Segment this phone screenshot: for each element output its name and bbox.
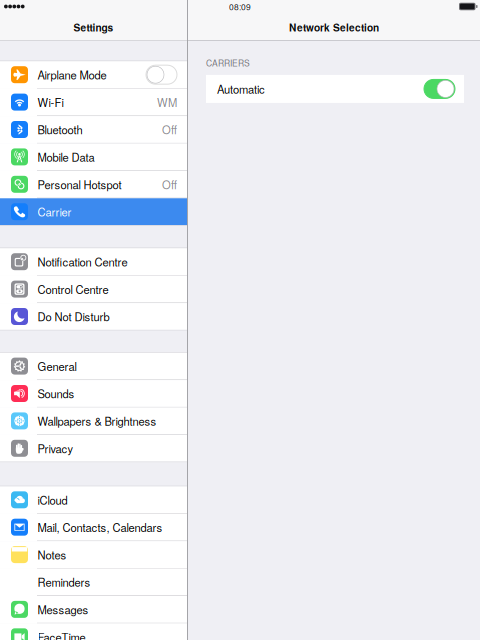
staticText: Do Not Disturb — [37, 308, 109, 324]
staticText: 08:09 — [229, 0, 251, 13]
button[interactable]: FaceTime — [0, 623, 187, 640]
button[interactable]: Messages — [0, 596, 187, 623]
staticText: CARRIERS — [206, 57, 250, 69]
button[interactable]: Mobile Data — [0, 143, 187, 171]
button[interactable]: Notes — [0, 541, 187, 569]
button[interactable]: Wi-Fi — [0, 89, 187, 116]
staticText: Personal Hotspot — [37, 176, 121, 192]
staticText: Settings — [73, 20, 113, 34]
button[interactable]: Privacy — [0, 435, 187, 462]
staticText: Mail, Contacts, Calendars — [37, 519, 162, 535]
staticText: Mobile Data — [37, 149, 94, 165]
button[interactable]: Wallpapers & Brightness — [0, 407, 187, 435]
staticText: Messages — [37, 601, 88, 617]
button[interactable]: Control Centre — [0, 276, 187, 303]
button[interactable]: Do Not Disturb — [0, 303, 187, 330]
staticText: iCloud — [37, 492, 67, 508]
staticText: FaceTime — [37, 629, 85, 640]
staticText: Wallpapers & Brightness — [37, 413, 156, 429]
button[interactable]: Carrier — [0, 198, 187, 225]
button[interactable]: iCloud — [0, 486, 187, 514]
button[interactable]: Sounds — [0, 380, 187, 407]
staticText: Reminders — [37, 574, 90, 590]
staticText: Wi-Fi — [37, 94, 63, 110]
button[interactable]: Reminders — [0, 569, 187, 596]
staticText: Carrier — [37, 204, 71, 220]
staticText: Airplane Mode — [37, 67, 106, 83]
staticText: Privacy — [37, 440, 73, 456]
staticText: Bluetooth — [37, 121, 82, 137]
staticText: Off — [162, 176, 177, 192]
button[interactable]: General — [0, 353, 187, 380]
staticText: Network Selection — [289, 20, 379, 34]
button[interactable]: Bluetooth — [0, 116, 187, 143]
button[interactable]: Mail, Contacts, Calendars — [0, 514, 187, 541]
button[interactable]: Notification Centre — [0, 248, 187, 276]
button[interactable]: Airplane Mode — [0, 61, 187, 89]
staticText: Sounds — [37, 385, 74, 401]
staticText: Notification Centre — [37, 254, 127, 270]
staticText: Notes — [37, 547, 66, 563]
staticText: Automatic — [217, 81, 265, 97]
staticText: WM — [157, 94, 177, 110]
staticText: Control Centre — [37, 281, 108, 297]
button[interactable]: Personal Hotspot — [0, 171, 187, 198]
staticText: General — [37, 358, 76, 374]
staticText: Off — [162, 121, 177, 137]
